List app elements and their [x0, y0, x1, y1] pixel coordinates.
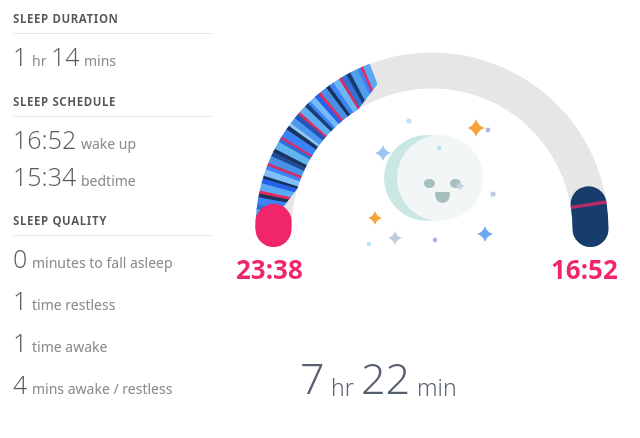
staticText: bedtime: [81, 171, 136, 190]
staticText: min: [417, 371, 457, 402]
button[interactable]: 1: [13, 283, 225, 317]
staticText: 14: [51, 39, 80, 73]
staticText: 7: [300, 348, 325, 407]
staticText: 0: [13, 241, 28, 275]
staticText: 23:38: [236, 251, 303, 286]
staticText: 1: [13, 325, 28, 359]
staticText: hr: [32, 51, 47, 70]
button[interactable]: SLEEP SCHEDULE: [0, 94, 225, 117]
button[interactable]: 0: [13, 241, 225, 275]
button[interactable]: 4: [13, 367, 225, 401]
staticText: mins awake / restless: [32, 379, 173, 398]
other: Sleep duration gauge: [0, 0, 640, 438]
staticText: time restless: [32, 295, 116, 314]
staticText: 16:52: [551, 251, 618, 286]
staticText: SLEEP DURATION: [13, 11, 119, 27]
button[interactable]: SLEEP QUALITY: [0, 213, 225, 236]
staticText: 1: [13, 39, 28, 73]
staticText: SLEEP SCHEDULE: [13, 94, 117, 110]
staticText: hr: [331, 371, 354, 402]
button[interactable]: 1: [13, 39, 225, 73]
button[interactable]: 7: [300, 348, 457, 407]
staticText: mins: [84, 51, 117, 70]
staticText: time awake: [32, 337, 108, 356]
staticText: minutes to fall asleep: [32, 253, 173, 272]
staticText: wake up: [81, 134, 137, 153]
button[interactable]: 15:34: [13, 159, 225, 193]
staticText: SLEEP QUALITY: [13, 213, 107, 229]
staticText: 15:34: [13, 159, 77, 193]
button[interactable]: 16:52: [13, 122, 225, 156]
staticText: 4: [13, 367, 28, 401]
staticText: 22: [361, 348, 411, 407]
staticText: 16:52: [13, 122, 77, 156]
button[interactable]: 1: [13, 325, 225, 359]
staticText: 1: [13, 283, 28, 317]
button[interactable]: SLEEP DURATION: [0, 11, 225, 34]
